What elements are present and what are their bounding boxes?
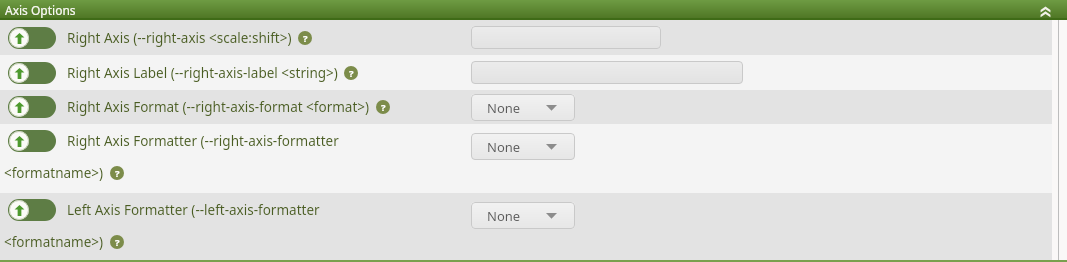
staticText: ?: [303, 32, 308, 45]
staticText: Right Axis Formatter (--right-axis-forma…: [67, 132, 339, 150]
button[interactable]: Toggle option on: [8, 199, 56, 221]
staticText: <formatname>): [4, 164, 104, 182]
button[interactable]: [471, 61, 743, 84]
staticText: Right Axis Label (--right-axis-label <st…: [67, 64, 338, 82]
button[interactable]: Toggle option on: [8, 96, 56, 118]
button[interactable]: Help: [110, 166, 124, 180]
button[interactable]: Toggle option on: [8, 27, 56, 49]
button[interactable]: None: [471, 133, 575, 160]
staticText: ?: [381, 101, 386, 114]
button[interactable]: Help: [344, 66, 358, 80]
staticText: ?: [349, 67, 354, 80]
staticText: Left Axis Formatter (--left-axis-formatt…: [67, 201, 320, 219]
staticText: Right Axis (--right-axis <scale:shift>): [67, 29, 292, 47]
staticText: ?: [115, 236, 120, 249]
button[interactable]: Help: [376, 100, 390, 114]
button[interactable]: Axis Options: [0, 0, 1067, 20]
button[interactable]: Toggle option on: [8, 62, 56, 84]
button[interactable]: [471, 26, 661, 49]
staticText: Axis Options: [5, 2, 76, 18]
button[interactable]: Toggle option on: [8, 130, 56, 152]
staticText: None: [487, 138, 521, 156]
staticText: <formatname>): [4, 233, 104, 251]
button[interactable]: Help: [298, 31, 312, 45]
button[interactable]: Help: [110, 235, 124, 249]
staticText: None: [487, 99, 521, 117]
staticText: None: [487, 207, 521, 225]
button[interactable]: None: [471, 94, 575, 121]
staticText: Right Axis Format (--right-axis-format <…: [67, 98, 370, 116]
staticText: ?: [115, 167, 120, 180]
button[interactable]: None: [471, 202, 575, 229]
button[interactable]: Collapse section: [1037, 2, 1053, 18]
